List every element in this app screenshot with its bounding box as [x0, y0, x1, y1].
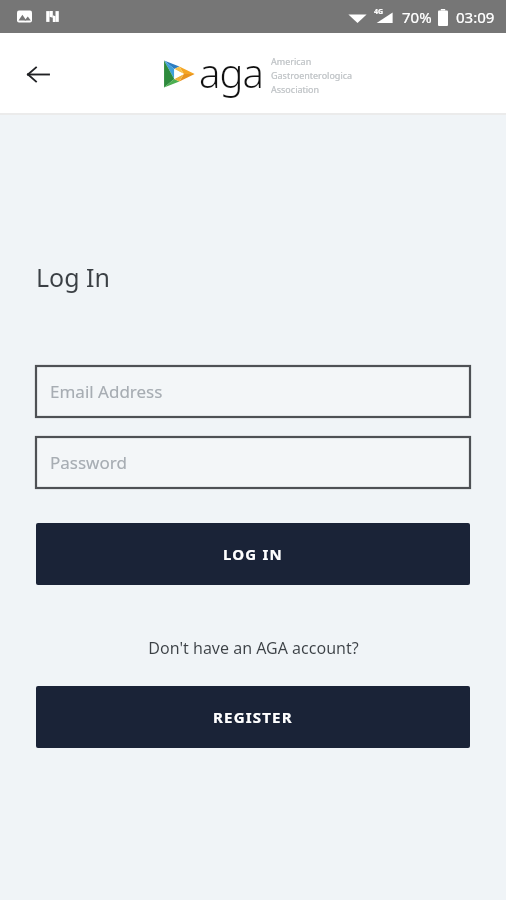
staticText: Password	[50, 451, 127, 474]
staticText: aga	[199, 45, 263, 99]
staticText: Log In	[36, 260, 111, 294]
staticText: 4G	[374, 7, 384, 17]
staticText: Gastroenterologica	[271, 69, 353, 81]
button[interactable]: Back	[14, 50, 62, 98]
staticText: LOG IN	[223, 544, 283, 564]
staticText: Association	[271, 83, 320, 95]
button[interactable]: Email Address	[36, 366, 470, 417]
button[interactable]: LOG IN	[36, 523, 470, 585]
staticText: 03:09	[456, 7, 495, 27]
button[interactable]: Password	[36, 437, 470, 488]
staticText: Don't have an AGA account?	[148, 637, 359, 659]
button[interactable]: REGISTER	[36, 686, 470, 748]
staticText: REGISTER	[213, 707, 293, 727]
staticText: 70%	[402, 7, 432, 27]
staticText: American	[271, 55, 312, 67]
staticText: Email Address	[50, 380, 163, 403]
